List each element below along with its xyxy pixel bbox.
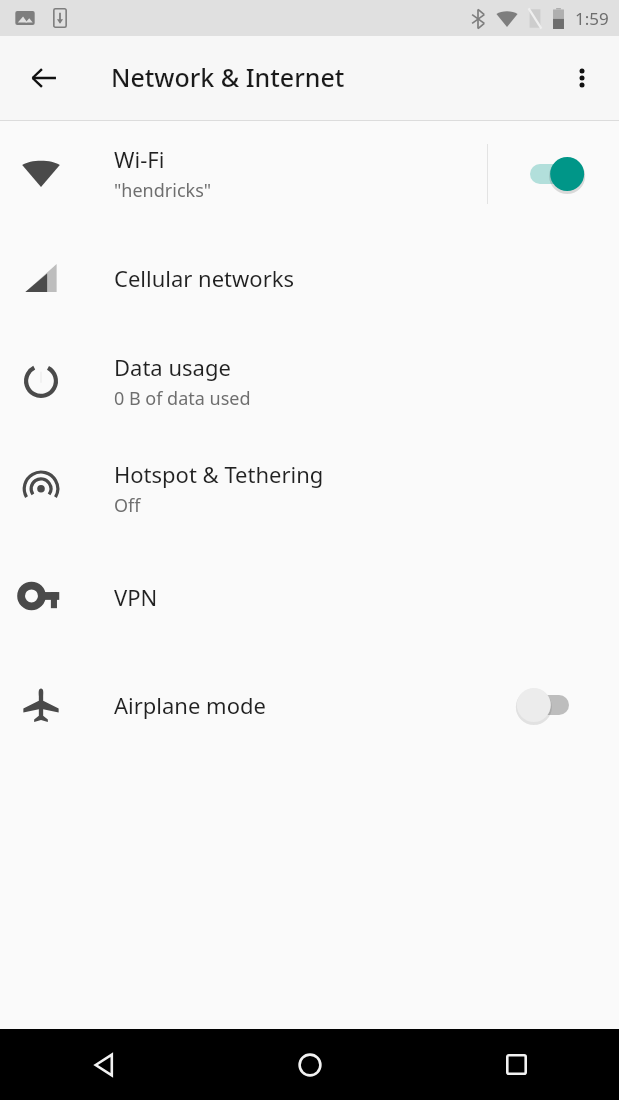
button[interactable]: Wi-Fi toggle, on — [530, 152, 596, 196]
button[interactable]: Data usage — [0, 329, 619, 433]
button[interactable]: Airplane mode — [0, 651, 619, 759]
button[interactable]: More options — [558, 54, 606, 102]
button[interactable]: Back — [0, 1029, 207, 1100]
button[interactable]: Wi-Fi — [0, 121, 619, 226]
staticText: VPN — [114, 582, 158, 612]
staticText: 1:59 — [575, 7, 609, 30]
button[interactable]: Back — [20, 54, 68, 102]
button[interactable]: Airplane mode toggle, off — [523, 683, 589, 727]
button[interactable]: Cellular networks — [0, 226, 619, 329]
staticText: "hendricks" — [114, 178, 212, 203]
staticText: Hotspot & Tethering — [114, 459, 324, 489]
button[interactable]: Hotspot & Tethering — [0, 433, 619, 543]
button[interactable]: Recent apps — [413, 1029, 619, 1100]
staticText: Airplane mode — [114, 690, 266, 720]
staticText: Off — [114, 493, 141, 518]
button[interactable]: Home — [207, 1029, 413, 1100]
staticText: Network & Internet — [111, 60, 345, 94]
button[interactable]: VPN — [0, 543, 619, 651]
staticText: Cellular networks — [114, 263, 295, 293]
staticText: Data usage — [114, 352, 231, 382]
staticText: Wi-Fi — [114, 144, 165, 174]
staticText: 0 B of data used — [114, 386, 251, 411]
